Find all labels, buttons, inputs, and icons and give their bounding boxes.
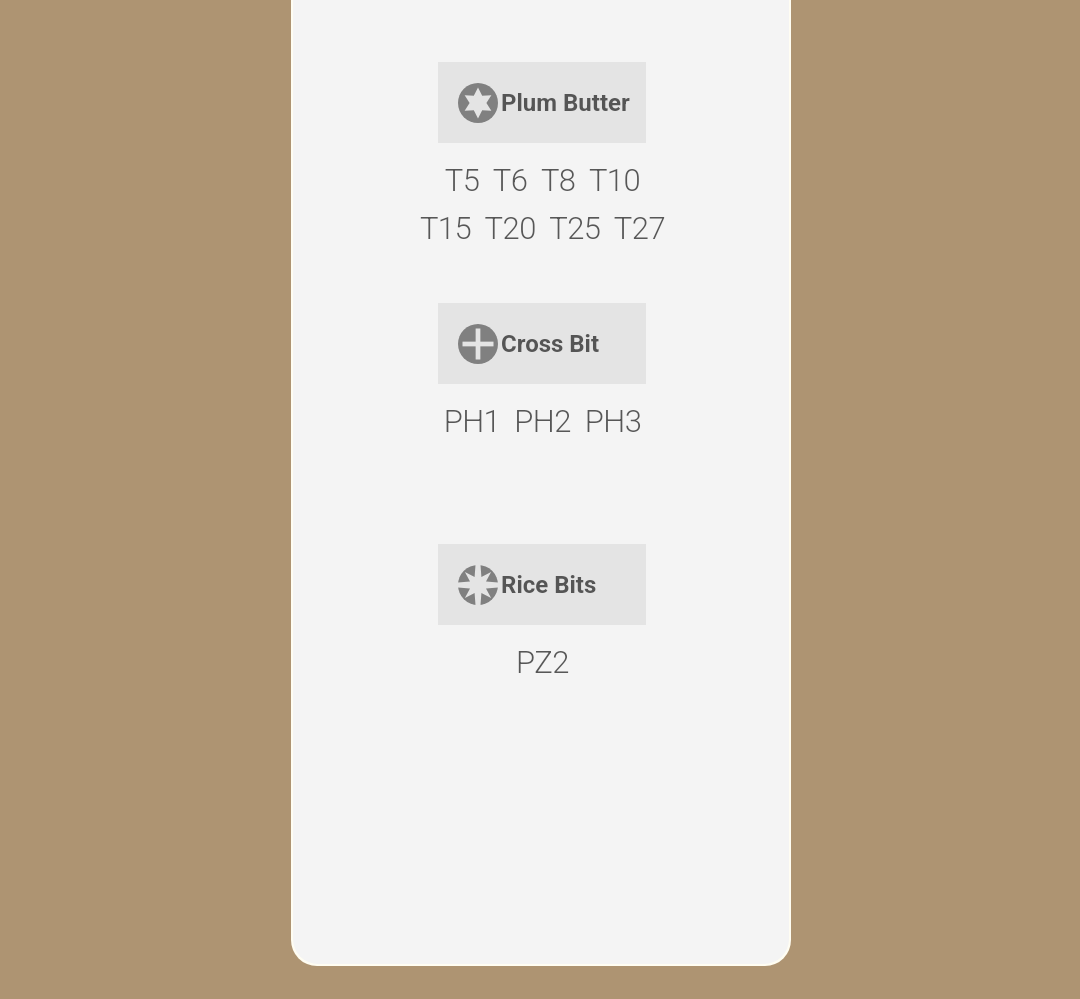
- button[interactable]: Rice Bits: [438, 544, 646, 625]
- staticText: Cross Bit: [501, 330, 600, 358]
- staticText: PZ2: [418, 644, 667, 680]
- staticText: Rice Bits: [501, 571, 597, 599]
- staticText: Plum Butter: [501, 89, 630, 117]
- staticText: PH1 PH2 PH3: [418, 403, 667, 439]
- button[interactable]: Cross Bit: [438, 303, 646, 384]
- staticText: T5 T6 T8 T10 T15 T20 T25 T27: [418, 162, 667, 247]
- button[interactable]: Plum Butter: [438, 62, 646, 143]
